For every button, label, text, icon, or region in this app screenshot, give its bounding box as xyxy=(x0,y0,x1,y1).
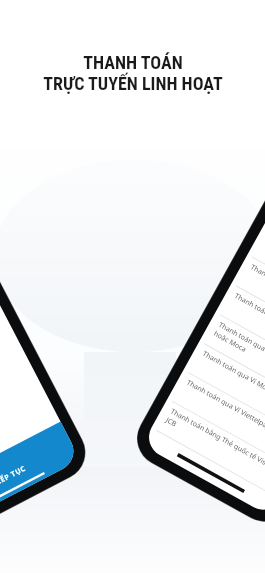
staticText: TRỰC TUYẾN LINH HOẠT xyxy=(43,73,223,94)
staticText: THANH TOÁN xyxy=(83,52,183,73)
